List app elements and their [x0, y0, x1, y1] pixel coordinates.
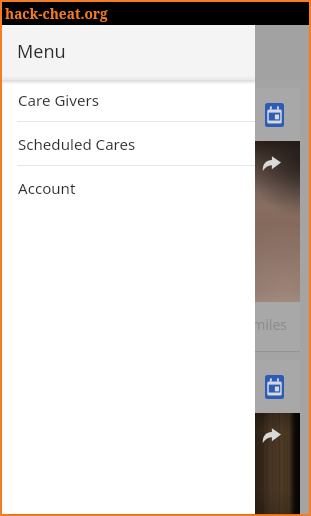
- button[interactable]: Scheduled Cares: [2, 123, 255, 167]
- staticText: hack-cheat.org: [5, 4, 108, 23]
- staticText: Distance : 2.4 miles: [161, 315, 288, 334]
- staticText: Scheduled Cares: [18, 134, 136, 155]
- button[interactable]: Care Givers: [2, 79, 255, 123]
- button[interactable]: Share: [256, 420, 286, 450]
- staticText: Menu: [17, 39, 66, 64]
- button[interactable]: Account: [2, 167, 255, 211]
- staticText: Mon, 12 Jun 10:00 AM: [18, 106, 154, 124]
- button[interactable]: Add to calendar: [255, 368, 293, 406]
- button[interactable]: Add to calendar: [255, 96, 293, 134]
- staticText: Care Givers: [18, 90, 99, 111]
- staticText: Account: [18, 178, 76, 199]
- button[interactable]: Share: [256, 148, 286, 178]
